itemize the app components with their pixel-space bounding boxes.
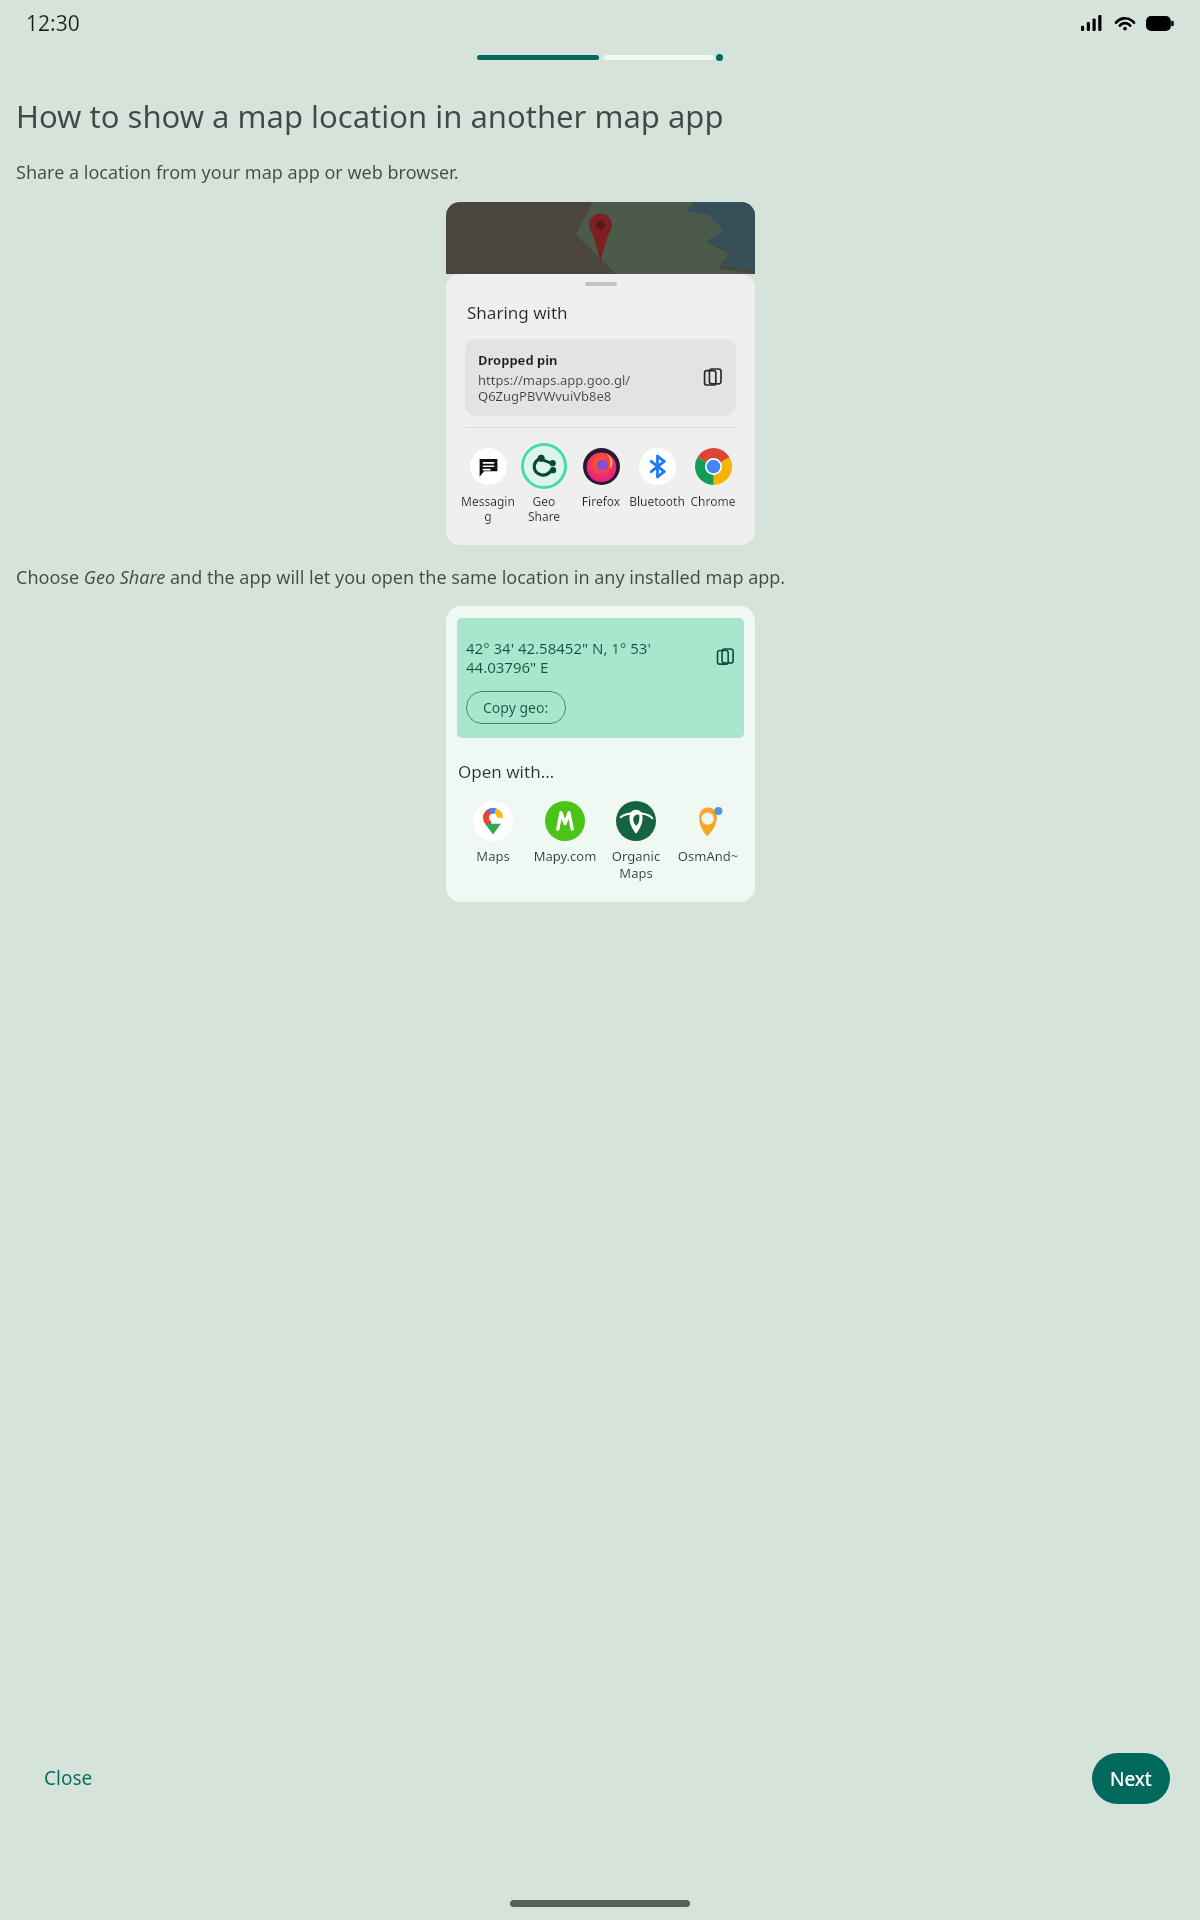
staticText: Sharing with: [467, 301, 568, 324]
staticText: Firefox: [573, 493, 629, 509]
button[interactable]: Firefox: [573, 441, 629, 511]
staticText: Geo Share: [516, 493, 572, 524]
other: Copy link: [703, 368, 723, 388]
staticText: Next: [1110, 1766, 1152, 1792]
button[interactable]: Mapy.com: [531, 799, 599, 867]
button[interactable]: Organic Maps: [602, 799, 670, 884]
staticText: https://maps.app.goo.gl/Q6ZugPBVWvuiVb8e…: [478, 371, 703, 404]
staticText: Open with…: [458, 760, 555, 783]
button[interactable]: Copy geo:: [466, 691, 566, 724]
staticText: Mapy.com: [531, 847, 599, 865]
staticText: Organic Maps: [602, 847, 670, 882]
staticText: 42° 34' 42.58452" N, 1° 53' 44.03796" E: [466, 638, 716, 677]
button[interactable]: Messaging: [460, 441, 516, 526]
button[interactable]: OsmAnd~: [674, 799, 742, 867]
button[interactable]: Close: [26, 1753, 111, 1803]
button[interactable]: Bluetooth: [629, 441, 685, 511]
staticText: 12:30: [26, 9, 80, 38]
staticText: How to show a map location in another ma…: [16, 95, 724, 137]
button[interactable]: Chrome: [685, 441, 741, 511]
staticText: Messaging: [460, 493, 516, 524]
staticText: Share a location from your map app or we…: [16, 160, 459, 185]
staticText: Choose Geo Share and the app will let yo…: [16, 565, 786, 590]
staticText: Maps: [459, 847, 527, 865]
staticText: Dropped pin: [478, 351, 558, 369]
button[interactable]: Maps: [459, 799, 527, 867]
staticText: Chrome: [685, 493, 741, 509]
button[interactable]: Dropped pin: [465, 339, 736, 416]
other: Copy coordinates: [716, 648, 735, 667]
button[interactable]: Next: [1092, 1753, 1170, 1804]
staticText: OsmAnd~: [674, 847, 742, 865]
staticText: Copy geo:: [483, 698, 549, 717]
staticText: Bluetooth: [629, 493, 685, 509]
button[interactable]: Geo Share: [516, 441, 572, 526]
staticText: Close: [44, 1765, 93, 1791]
